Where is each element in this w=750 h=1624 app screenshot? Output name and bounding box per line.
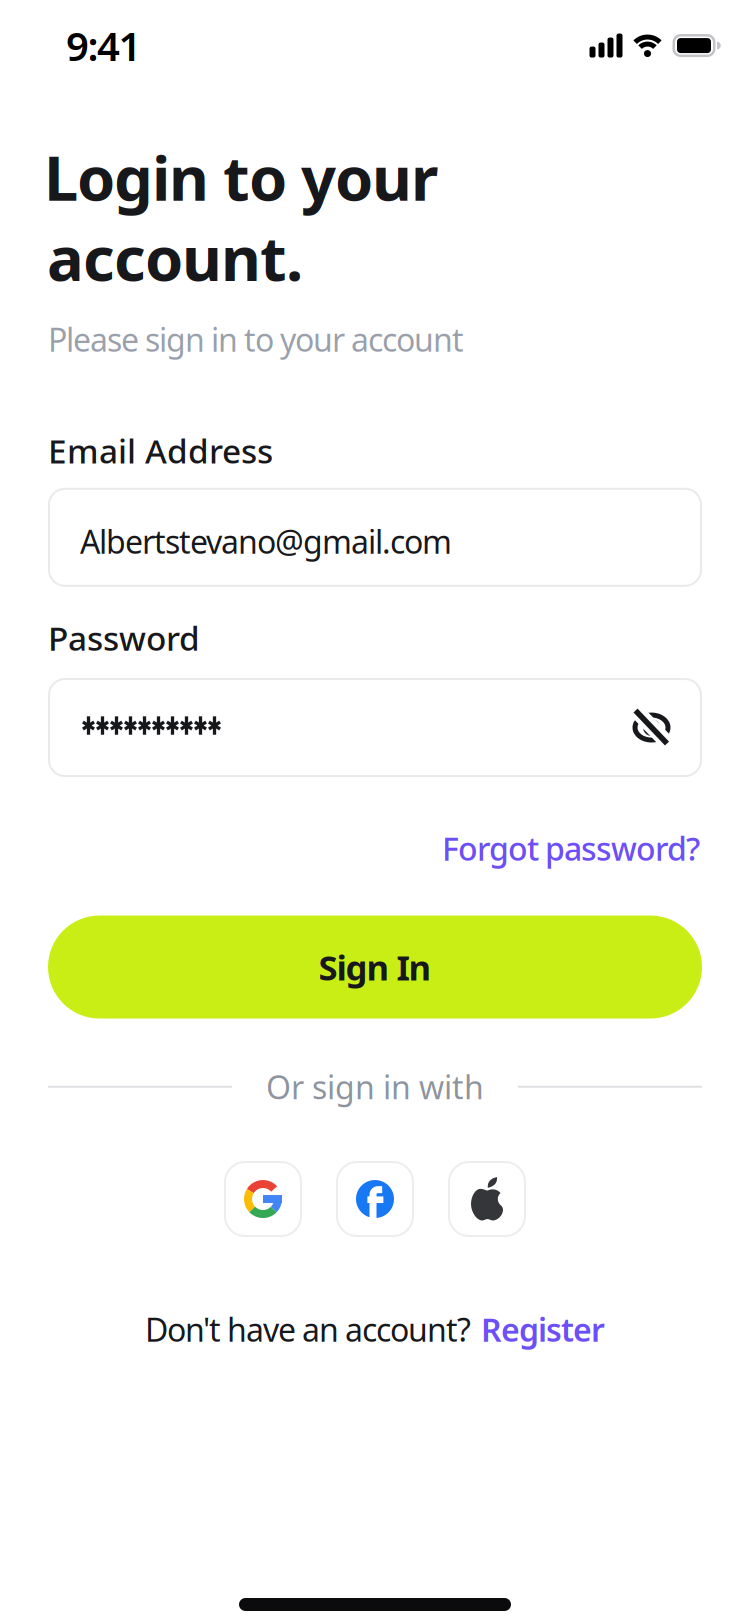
button[interactable]: Sign in with Google <box>224 1161 302 1237</box>
staticText: Don't have an account? <box>145 1308 471 1350</box>
button[interactable]: Show password <box>633 708 671 746</box>
staticText: Sign In <box>318 944 431 990</box>
staticText: Password <box>48 616 200 660</box>
button[interactable]: Forgot password? <box>442 827 700 869</box>
staticText: Or sign in with <box>266 1065 484 1108</box>
button[interactable]: Sign in with Apple <box>448 1161 526 1237</box>
staticText: Register <box>481 1308 605 1350</box>
button[interactable]: Albertstevano@gmail.com <box>48 488 702 587</box>
staticText: 9:41 <box>66 19 141 72</box>
staticText: Login to your <box>44 136 438 217</box>
staticText: Please sign in to your account <box>48 318 464 360</box>
button[interactable]: Register <box>481 1308 605 1350</box>
button[interactable] <box>48 678 702 777</box>
staticText: Email Address <box>48 428 273 473</box>
staticText: Forgot password? <box>442 827 700 869</box>
staticText: Albertstevano@gmail.com <box>80 520 452 562</box>
staticText: account. <box>47 217 303 298</box>
button[interactable]: Sign In <box>48 915 702 1018</box>
button[interactable]: Sign in with Facebook <box>336 1161 414 1237</box>
